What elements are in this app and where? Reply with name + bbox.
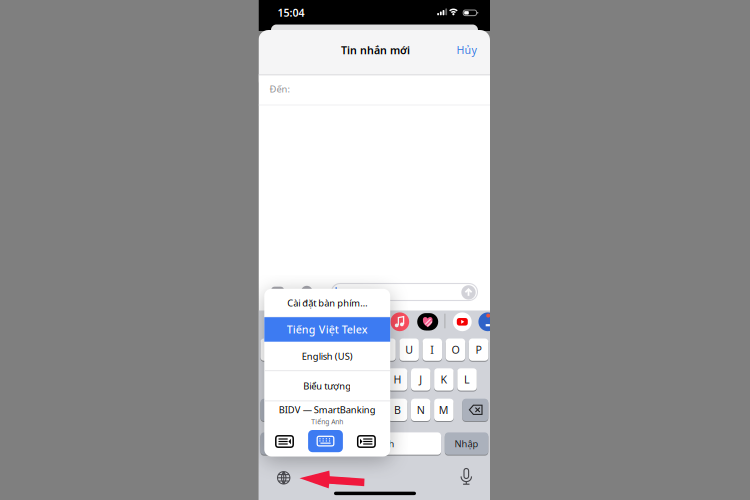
- button[interactable]: X: [318, 398, 338, 421]
- staticText: Tiếng Anh: [311, 417, 343, 426]
- staticText: V: [371, 403, 377, 417]
- button[interactable]: Dictation: [458, 468, 474, 486]
- staticText: Nhập: [455, 437, 479, 450]
- button[interactable]: Send: [461, 285, 476, 300]
- staticText: M: [439, 403, 449, 417]
- button[interactable]: A: [272, 368, 292, 391]
- button[interactable]: M: [434, 398, 454, 421]
- button[interactable]: R: [330, 338, 349, 361]
- button[interactable]: Apps: [301, 286, 312, 297]
- button[interactable]: D: [318, 368, 338, 391]
- staticText: Hủy: [456, 43, 476, 57]
- staticText: Đến:: [269, 83, 290, 95]
- button[interactable]: Q: [260, 338, 280, 361]
- staticText: 15:04: [277, 5, 304, 20]
- staticText: D: [324, 372, 332, 387]
- button[interactable]: O: [446, 338, 465, 361]
- staticText: N: [417, 403, 425, 417]
- staticText: Cài đặt bàn phím…: [287, 297, 367, 309]
- button[interactable]: YouTube: [453, 312, 472, 331]
- staticText: Tin nhắn mới: [341, 43, 410, 57]
- button[interactable]: H: [388, 368, 407, 391]
- staticText: Biểu tượng: [303, 380, 351, 392]
- button[interactable]: V: [365, 398, 384, 421]
- staticText: Z: [302, 403, 308, 417]
- button[interactable]: L: [457, 368, 477, 391]
- button[interactable]: Tiếng Việt Telex: [264, 317, 390, 342]
- staticText: R: [336, 343, 343, 357]
- staticText: S: [302, 372, 308, 387]
- button[interactable]: dấu cách: [293, 432, 441, 455]
- button[interactable]: Next keyboard: [276, 470, 292, 486]
- button[interactable]: F: [342, 368, 361, 391]
- staticText: X: [325, 403, 331, 417]
- button[interactable]: Camera: [271, 287, 284, 296]
- button[interactable]: Music: [390, 312, 409, 331]
- button[interactable]: W: [284, 338, 303, 361]
- staticText: dấu cách: [357, 437, 395, 450]
- button[interactable]: English (US): [264, 342, 390, 371]
- staticText: U: [405, 343, 413, 357]
- button[interactable]: N: [411, 398, 430, 421]
- staticText: BIDV — SmartBanking: [279, 403, 376, 416]
- button[interactable]: Cài đặt bàn phím…: [264, 289, 390, 317]
- staticText: K: [440, 372, 447, 387]
- button[interactable]: Y: [376, 338, 396, 361]
- staticText: C: [348, 403, 355, 417]
- button[interactable]: K: [434, 368, 454, 391]
- button[interactable]: Z: [295, 398, 315, 421]
- staticText: O: [451, 343, 459, 357]
- button[interactable]: J: [411, 368, 430, 391]
- staticText: English (US): [302, 350, 353, 362]
- button[interactable]: G: [365, 368, 384, 391]
- button[interactable]: C: [341, 398, 361, 421]
- staticText: J: [419, 372, 422, 387]
- button[interactable]: T: [353, 338, 373, 361]
- button[interactable]: Digital Touch: [417, 313, 438, 330]
- staticText: E: [314, 343, 320, 357]
- button[interactable]: Biểu tượng: [264, 371, 390, 401]
- staticText: 123: [267, 438, 282, 449]
- button[interactable]: U: [399, 338, 419, 361]
- button[interactable]: B: [388, 398, 407, 421]
- staticText: B: [394, 403, 401, 417]
- button[interactable]: I: [422, 338, 442, 361]
- button[interactable]: BIDV — SmartBanking: [264, 401, 390, 428]
- staticText: H: [394, 372, 402, 387]
- button[interactable]: P: [469, 338, 488, 361]
- staticText: Tiếng Việt Telex: [287, 322, 368, 337]
- staticText: P: [476, 343, 482, 357]
- button[interactable]: Standard keyboard: [308, 430, 343, 452]
- staticText: I: [430, 343, 434, 357]
- button[interactable]: Dock keyboard left: [274, 434, 294, 448]
- button[interactable]: Delete: [462, 398, 488, 421]
- staticText: F: [348, 372, 354, 387]
- button[interactable]: Nhập: [445, 432, 488, 455]
- button[interactable]: Dock keyboard right: [356, 434, 376, 448]
- button[interactable]: S: [295, 368, 315, 391]
- staticText: L: [464, 372, 470, 387]
- button[interactable]: E: [307, 338, 326, 361]
- button[interactable]: Hủy: [450, 41, 482, 59]
